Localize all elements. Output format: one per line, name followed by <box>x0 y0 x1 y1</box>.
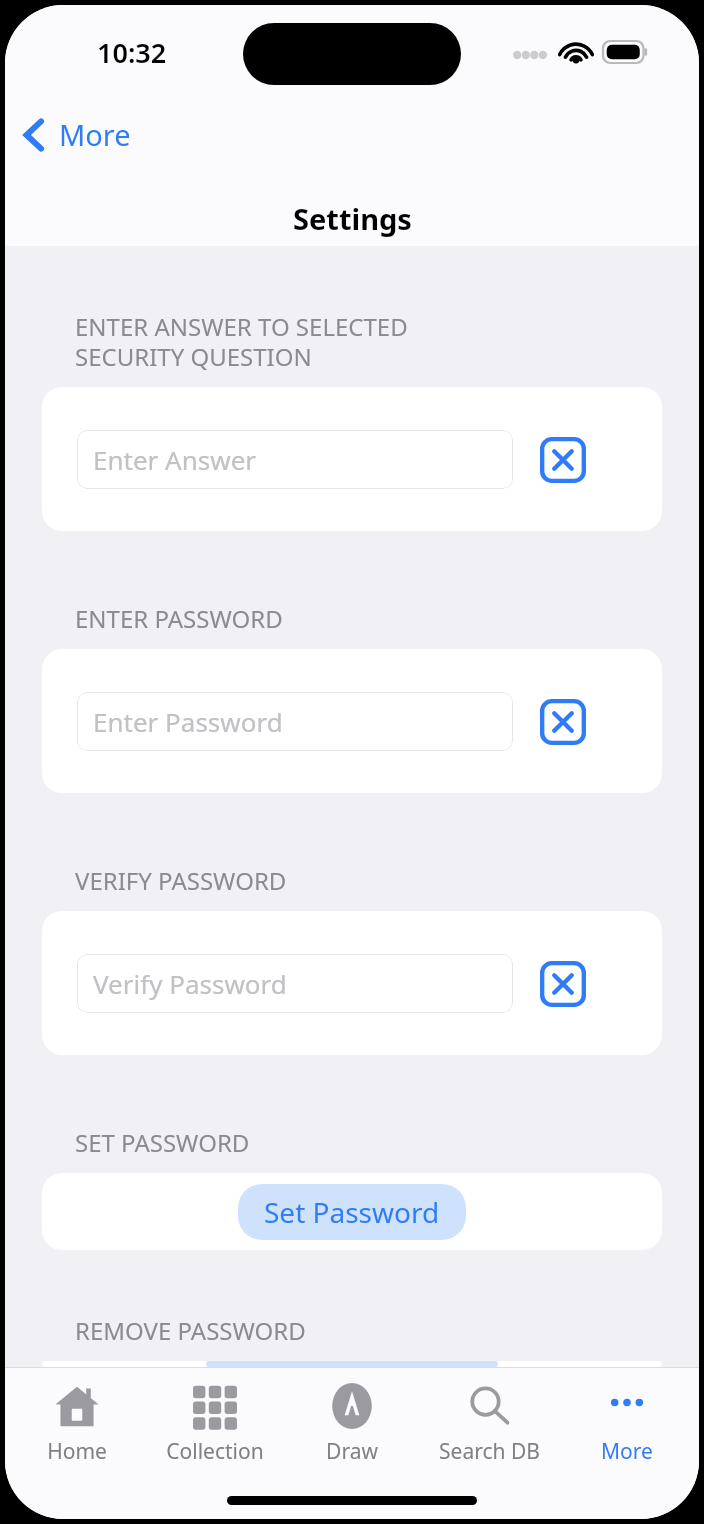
button[interactable]: More <box>562 1379 692 1470</box>
staticText: ENTER ANSWER TO SELECTED SECURITY QUESTI… <box>75 310 408 373</box>
button[interactable]: More <box>5 109 151 160</box>
staticText: More <box>601 1437 653 1466</box>
button[interactable]: Draw <box>287 1379 417 1470</box>
button[interactable]: Search DB <box>424 1379 554 1470</box>
button[interactable]: Home <box>12 1379 142 1470</box>
staticText: More <box>59 115 131 154</box>
button[interactable]: Set Password <box>238 1184 466 1240</box>
button[interactable]: Clear Enter Password <box>539 698 587 746</box>
button[interactable]: Verify Password <box>77 954 513 1013</box>
button[interactable]: Enter Password <box>77 692 513 751</box>
staticText: Collection <box>166 1437 264 1466</box>
staticText: Set Password <box>264 1193 440 1231</box>
staticText: VERIFY PASSWORD <box>75 864 287 897</box>
staticText: Draw <box>326 1437 378 1466</box>
staticText: REMOVE PASSWORD <box>75 1314 306 1347</box>
staticText: Enter Answer <box>93 442 257 477</box>
staticText: SET PASSWORD <box>75 1126 250 1159</box>
staticText: ENTER PASSWORD <box>75 602 283 635</box>
staticText: Home <box>47 1437 107 1466</box>
button[interactable]: Enter Answer <box>77 430 513 489</box>
staticText: 10:32 <box>97 34 167 71</box>
staticText: Enter Password <box>93 704 283 739</box>
staticText: Settings <box>293 199 412 238</box>
staticText: Verify Password <box>93 966 287 1001</box>
staticText: Search DB <box>439 1437 540 1466</box>
button[interactable]: Clear Verify Password <box>539 960 587 1008</box>
button[interactable]: Clear Enter Answer <box>539 436 587 484</box>
button[interactable]: Collection <box>150 1379 280 1470</box>
